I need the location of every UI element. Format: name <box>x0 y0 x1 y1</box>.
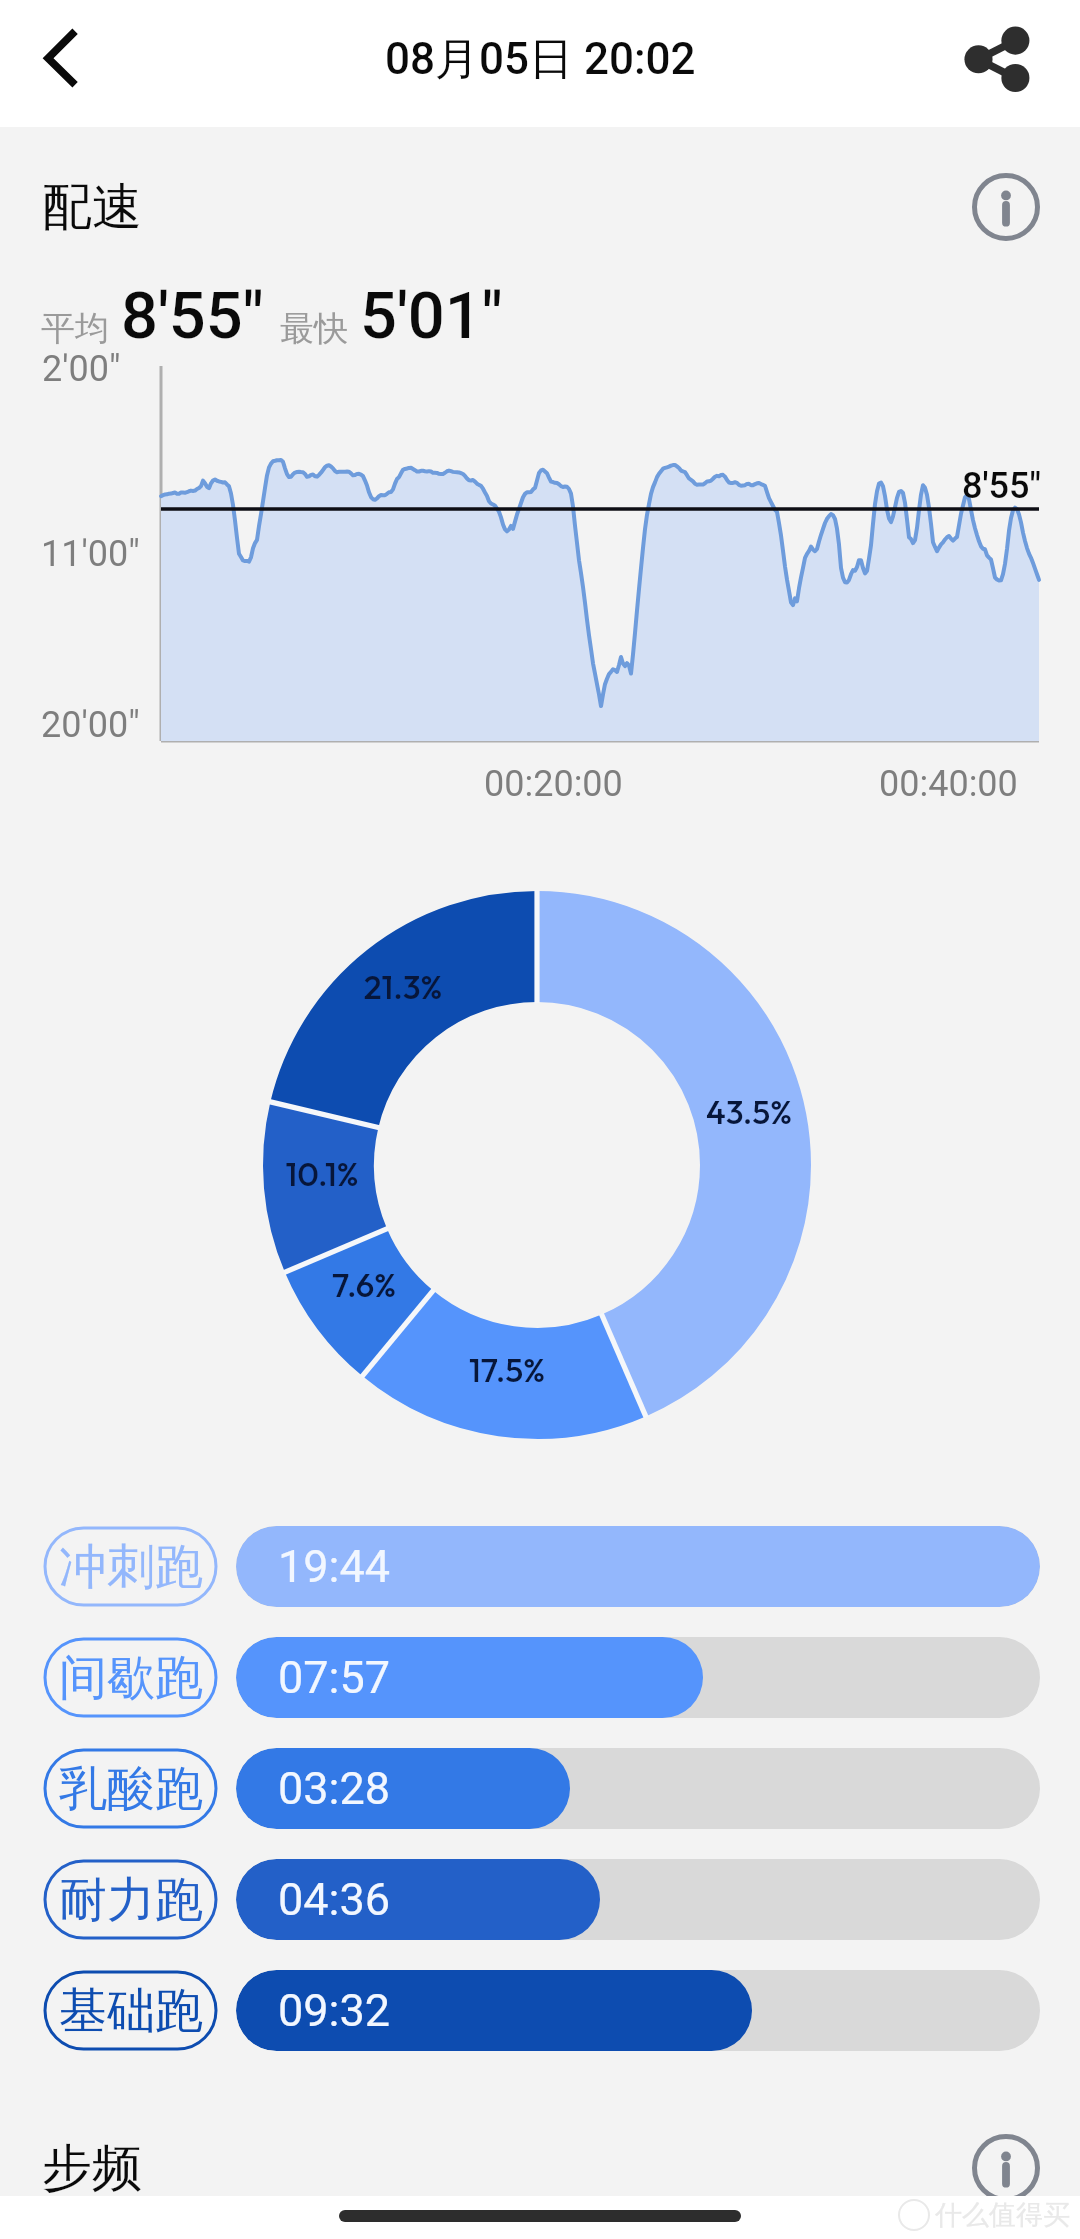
staticText: 步频 <box>42 2137 142 2200</box>
staticText: 07:57 <box>278 1651 391 1704</box>
staticText: 11'00" <box>41 533 140 575</box>
staticText: 00:40:00 <box>879 763 1018 805</box>
staticText: 2'00" <box>42 348 121 390</box>
staticText: 8'55" <box>121 278 264 354</box>
button[interactable]: 乳酸跑 <box>0 1748 1080 1829</box>
button[interactable]: 间歇跑 <box>0 1637 1080 1718</box>
staticText: 43.5% <box>669 1091 829 1133</box>
staticText: 00:20:00 <box>484 763 623 805</box>
staticText: 08月05日 20:02 <box>385 32 696 87</box>
staticText: 5'01" <box>360 278 503 354</box>
staticText: 21.3% <box>323 966 483 1008</box>
staticText: 20'00" <box>41 704 140 746</box>
staticText: 19:44 <box>278 1540 391 1593</box>
button[interactable]: Back <box>8 12 112 116</box>
staticText: 17.5% <box>427 1349 587 1391</box>
staticText: 03:28 <box>278 1762 391 1815</box>
button[interactable]: Info <box>972 173 1040 241</box>
staticText: 7.6% <box>284 1264 444 1306</box>
button[interactable]: 耐力跑 <box>0 1859 1080 1940</box>
staticText: 耐力跑 <box>59 1870 203 1930</box>
button[interactable]: Share <box>953 12 1057 116</box>
staticText: 04:36 <box>278 1873 391 1926</box>
button[interactable]: 基础跑 <box>0 1970 1080 2051</box>
staticText: 09:32 <box>278 1984 391 2037</box>
button[interactable]: Info <box>972 2134 1040 2202</box>
staticText: 平均 <box>41 307 109 350</box>
staticText: 10.1% <box>242 1153 402 1195</box>
staticText: 乳酸跑 <box>59 1759 203 1819</box>
button[interactable]: 冲刺跑 <box>0 1526 1080 1607</box>
staticText: 间歇跑 <box>59 1648 203 1708</box>
staticText: 冲刺跑 <box>59 1537 203 1597</box>
staticText: 8'55" <box>962 465 1041 507</box>
staticText: 最快 <box>280 307 348 350</box>
staticText: 配速 <box>42 176 142 239</box>
staticText: 什么值得买 <box>935 2198 1070 2232</box>
staticText: 基础跑 <box>59 1981 203 2041</box>
